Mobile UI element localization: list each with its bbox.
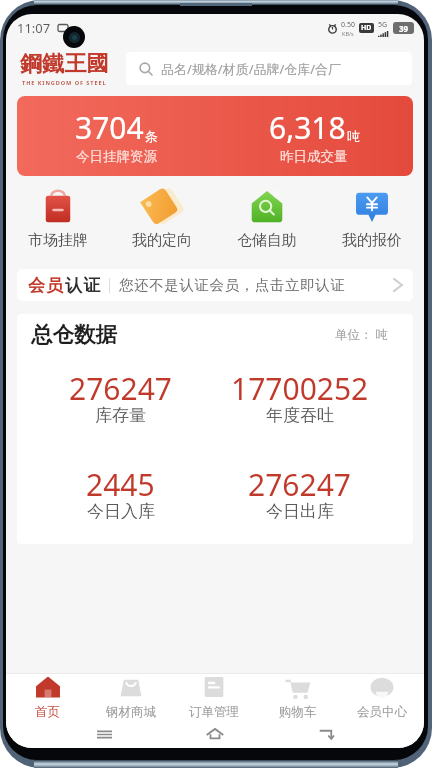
staticText: 年度吞吐 — [266, 405, 334, 423]
button[interactable]: 首页 — [6, 674, 89, 720]
staticText: 3704 — [75, 107, 144, 148]
button[interactable]: 2445 — [31, 464, 210, 523]
staticText: 条 — [145, 128, 158, 144]
button[interactable]: 订单管理 — [172, 674, 256, 720]
button[interactable]: 购物车 — [256, 674, 340, 720]
other: Back — [317, 726, 334, 743]
staticText: 总仓数据 — [31, 321, 117, 348]
button[interactable]: 我的定向 — [110, 188, 214, 252]
staticText: 今日挂牌资源 — [76, 148, 157, 165]
staticText: 品名/规格/材质/品牌/仓库/合厂 — [161, 60, 404, 78]
staticText: 今日出库 — [266, 501, 334, 519]
staticText: 您还不是认证会员，点击立即认证 — [119, 276, 392, 294]
staticText: 鋼鐵王國 — [20, 50, 109, 78]
staticText: 会员 — [28, 275, 65, 296]
button[interactable]: 会员中心 — [340, 674, 424, 720]
staticText: KB/s — [342, 30, 354, 37]
staticText: 我的定向 — [132, 231, 192, 250]
staticText: 认证 — [65, 275, 102, 296]
staticText: 首页 — [35, 704, 60, 720]
staticText: 订单管理 — [189, 704, 239, 720]
button[interactable]: 品名/规格/材质/品牌/仓库/合厂 — [126, 52, 412, 85]
button[interactable]: 我的报价 — [319, 188, 424, 252]
staticText: 今日入库 — [87, 501, 155, 519]
button[interactable]: 3704 — [17, 96, 413, 176]
staticText: 我的报价 — [342, 231, 402, 250]
button[interactable]: 钢材商城 — [89, 674, 172, 720]
staticText: 11:07 — [17, 19, 51, 37]
staticText: 会员中心 — [357, 704, 407, 720]
staticText: 0.50 — [341, 20, 355, 30]
staticText: 钢材商城 — [106, 704, 156, 720]
staticText: 39 — [399, 23, 409, 34]
button[interactable]: 市场挂牌 — [6, 188, 110, 252]
staticText: 吨 — [347, 128, 360, 144]
staticText: 276247 — [69, 368, 172, 409]
staticText: 6,318 — [269, 107, 346, 148]
staticText: 库存量 — [95, 405, 146, 423]
staticText: 5G — [378, 20, 388, 30]
staticText: 仓储自助 — [237, 231, 297, 250]
staticText: 2445 — [86, 464, 155, 505]
staticText: 昨日成交量 — [280, 148, 348, 165]
other: Home — [206, 725, 224, 743]
staticText: 购物车 — [279, 704, 317, 720]
staticText: 单位： 吨 — [335, 326, 389, 343]
staticText: HD — [361, 23, 372, 33]
button[interactable]: 276247 — [210, 464, 389, 523]
button[interactable]: 鋼鐵王國 Logo — [17, 50, 111, 87]
button[interactable]: 276247 — [31, 368, 210, 427]
staticText: 17700252 — [231, 368, 369, 409]
button[interactable]: 会员 — [17, 269, 413, 301]
other: Recents — [96, 726, 113, 743]
staticText: THE KINGDOM OF STEEL — [22, 79, 107, 87]
button[interactable]: 仓储自助 — [214, 188, 319, 252]
staticText: 276247 — [248, 464, 351, 505]
staticText: 市场挂牌 — [28, 231, 88, 250]
button[interactable]: 17700252 — [210, 368, 389, 427]
